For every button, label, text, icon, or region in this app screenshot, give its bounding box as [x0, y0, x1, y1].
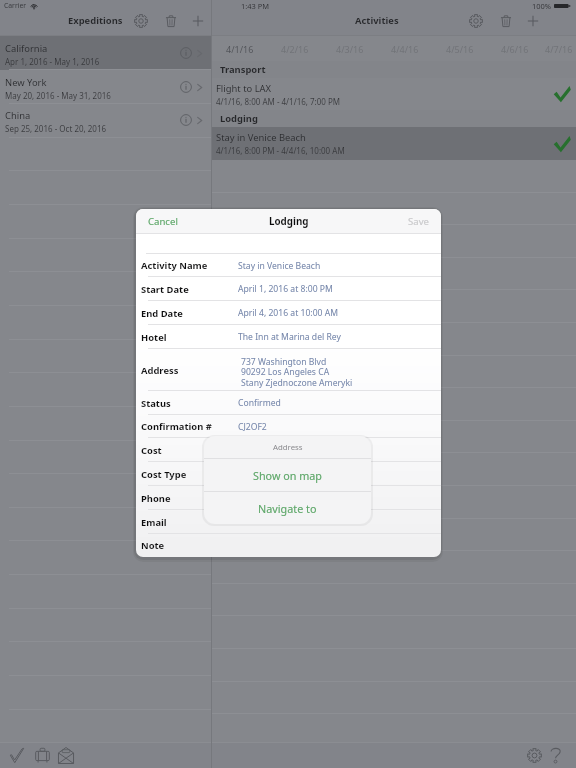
button[interactable]: New York: [0, 70, 211, 104]
button[interactable]: Start Date: [136, 277, 441, 301]
button[interactable]: Hotel: [136, 325, 441, 349]
staticText: Activity Name: [141, 259, 208, 272]
button[interactable]: Status: [136, 391, 441, 415]
button[interactable]: Help: [545, 745, 565, 765]
staticText: The Inn at Marina del Rey: [238, 331, 341, 343]
staticText: 4/4/16: [391, 43, 419, 55]
button[interactable]: End Date: [136, 301, 441, 325]
button[interactable]: Email: [136, 510, 441, 534]
staticText: Lodging: [220, 112, 258, 125]
button[interactable]: Note: [136, 534, 441, 557]
button[interactable]: Done: [7, 746, 27, 764]
button[interactable]: 4/1/16: [212, 36, 267, 61]
button[interactable]: Show on map: [204, 459, 371, 491]
button[interactable]: China: [0, 103, 211, 137]
button[interactable]: 4/3/16: [322, 36, 377, 61]
staticText: Activities: [355, 14, 399, 27]
staticText: 100%: [532, 1, 552, 11]
staticText: Cost: [141, 444, 162, 457]
button[interactable]: Packing list: [32, 746, 52, 764]
staticText: Confirmed: [238, 397, 281, 409]
staticText: 4/6/16: [501, 43, 529, 55]
button[interactable]: Add: [187, 10, 209, 32]
staticText: 4/2/16: [281, 43, 309, 55]
staticText: 4/5/16: [446, 43, 474, 55]
button[interactable]: California: [0, 36, 211, 70]
button[interactable]: 4/7/16: [542, 36, 576, 61]
button[interactable]: Save: [400, 209, 441, 234]
staticText: Flight to LAX: [216, 82, 272, 95]
staticText: Stay in Venice Beach: [238, 260, 321, 272]
button[interactable]: Cost Type: [136, 462, 441, 486]
staticText: Show on map: [253, 468, 323, 483]
button[interactable]: Address: [136, 349, 441, 391]
button[interactable]: 4/4/16: [377, 36, 432, 61]
staticText: China: [5, 109, 31, 122]
staticText: April 1, 2016 at 8:00 PM: [238, 283, 333, 295]
staticText: Cost Type: [141, 468, 187, 481]
staticText: Transport: [220, 63, 266, 76]
staticText: Expeditions: [68, 14, 123, 27]
staticText: Phone: [141, 492, 171, 505]
staticText: Note: [141, 539, 165, 552]
staticText: 737 Washington Blvd 90292 Los Angeles CA…: [241, 356, 353, 389]
staticText: Save: [408, 215, 429, 228]
staticText: 4/7/16: [545, 43, 573, 55]
button[interactable]: Stay in Venice Beach: [212, 127, 576, 160]
button[interactable]: 4/6/16: [487, 36, 542, 61]
staticText: Carrier: [4, 1, 27, 10]
button[interactable]: Add: [522, 10, 544, 32]
button[interactable]: Cost: [136, 438, 441, 462]
staticText: 4/1/16, 8:00 PM - 4/4/16, 10:00 AM: [216, 145, 345, 156]
button[interactable]: 4/5/16: [432, 36, 487, 61]
staticText: 1:43 PM: [241, 1, 270, 11]
staticText: Email: [141, 516, 167, 529]
staticText: 4/1/16: [226, 43, 254, 55]
staticText: End Date: [141, 307, 183, 320]
button[interactable]: Settings: [465, 10, 487, 32]
staticText: CJ2OF2: [238, 421, 267, 433]
staticText: Start Date: [141, 283, 189, 296]
button[interactable]: Flight to LAX: [212, 78, 576, 110]
button[interactable]: Email PDF: [56, 746, 76, 764]
staticText: Cancel: [148, 215, 178, 228]
button[interactable]: Settings: [130, 10, 152, 32]
staticText: Sep 25, 2016 - Oct 20, 2016: [5, 123, 107, 134]
staticText: 4/1/16, 8:00 AM - 4/1/16, 7:00 PM: [216, 96, 341, 107]
staticText: May 20, 2016 - May 31, 2016: [5, 90, 111, 101]
button[interactable]: Phone: [136, 486, 441, 510]
button[interactable]: Activity Name: [136, 254, 441, 277]
staticText: Navigate to: [258, 501, 317, 516]
button[interactable]: Delete: [160, 10, 182, 32]
staticText: Stay in Venice Beach: [216, 131, 306, 144]
staticText: Address: [273, 442, 303, 453]
staticText: California: [5, 42, 48, 55]
staticText: Address: [141, 364, 179, 377]
staticText: Confirmation #: [141, 420, 212, 433]
button[interactable]: Confirmation #: [136, 415, 441, 438]
staticText: Lodging: [269, 215, 309, 228]
button[interactable]: Settings: [524, 745, 544, 765]
staticText: 4/3/16: [336, 43, 364, 55]
staticText: Status: [141, 397, 171, 410]
staticText: Apr 1, 2016 - May 1, 2016: [5, 56, 100, 67]
button[interactable]: 4/2/16: [267, 36, 322, 61]
button[interactable]: Navigate to: [204, 492, 371, 524]
staticText: Hotel: [141, 331, 167, 344]
button[interactable]: Delete: [495, 10, 517, 32]
button[interactable]: Cancel: [136, 209, 186, 234]
staticText: New York: [5, 76, 47, 89]
staticText: April 4, 2016 at 10:00 AM: [238, 307, 338, 319]
